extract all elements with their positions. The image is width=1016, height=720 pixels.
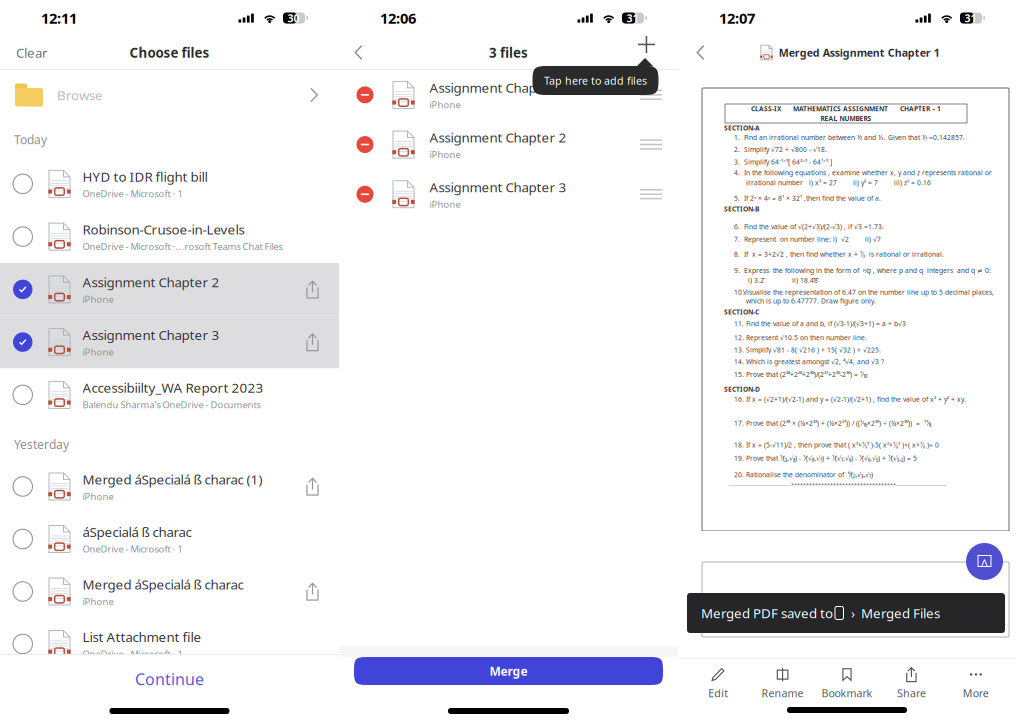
staticText: 7. Represent on number line: i) √2 ii) √… [734, 235, 881, 244]
button[interactable]: Share [879, 666, 944, 700]
button[interactable]: Assignment Chapter 2 [0, 263, 339, 316]
staticText: OneDrive - Microsoft · 1 [82, 648, 182, 660]
button[interactable]: Back [678, 36, 724, 69]
staticText: 16. If x = (√2+1)/(√2-1) and y = (√2-1)/… [734, 395, 966, 404]
button[interactable]: Clear [0, 36, 86, 69]
button[interactable]: Rename [750, 666, 815, 700]
staticText: CLASS-IX MATHEMATICS ASSIGNMENT CHAPTER … [751, 104, 941, 113]
staticText: Merge [489, 663, 527, 679]
staticText: 14. Which is greatest amongst √2, ⁴√4, a… [734, 357, 884, 366]
button[interactable]: Markup [966, 543, 1003, 580]
staticText: 12. Represent √10.5 on then number line. [734, 333, 867, 342]
staticText: 10.Visualise the representation of 6.47 … [734, 288, 994, 297]
staticText: Assignment Chapter 2 [82, 273, 219, 291]
button[interactable]: Add files [638, 36, 678, 69]
button[interactable]: Assignment Chapter 2 [339, 120, 678, 169]
staticText: SECTION-D [724, 385, 760, 394]
staticText: SECTION-A [724, 123, 760, 132]
staticText: OneDrive - Microsoft · 1 [82, 187, 182, 200]
staticText: 20. Rationalise the denominator of ⁶⁄(₂₊… [734, 470, 873, 479]
staticText: iPhone [429, 98, 460, 111]
staticText: Accessibiilty_WA Report 2023 [82, 379, 263, 396]
staticText: Choose files [129, 44, 209, 61]
staticText: Merged Assignment Chapter 1 [779, 45, 940, 60]
staticText: which is up to 6.47777. Draw figure only… [734, 296, 876, 305]
staticText: 12:06 [380, 8, 416, 28]
button[interactable]: Merged áSpecialá ß charac [0, 565, 339, 618]
staticText: List Attachment file [82, 628, 201, 646]
staticText: 31 [964, 11, 976, 25]
staticText: REAL NUMBERS [820, 114, 871, 123]
staticText: 30 [287, 11, 299, 25]
staticText: Balendu Sharma's OneDrive - Documents [82, 398, 260, 411]
staticText: Today [14, 132, 47, 147]
staticText: Merged PDF saved to › Merged Files [701, 604, 940, 622]
staticText: iPhone [429, 198, 460, 210]
staticText: Assignment Chapter 3 [82, 326, 219, 344]
staticText: 12:11 [41, 8, 77, 28]
button[interactable]: Accessibiilty_WA Report 2023 [0, 368, 339, 421]
button[interactable]: List Attachment file [0, 618, 339, 670]
staticText: 1. Find an irrational number between ½ a… [734, 133, 965, 142]
staticText: iPhone [82, 490, 113, 503]
staticText: iPhone [429, 148, 460, 161]
staticText: Robinson-Crusoe-in-Levels [82, 221, 244, 238]
button[interactable]: Assignment Chapter 3 [339, 169, 678, 219]
button[interactable]: More [944, 666, 1008, 700]
button[interactable]: Browse [0, 70, 339, 120]
staticText: iPhone [82, 293, 113, 305]
staticText: SECTION-B [724, 204, 759, 213]
staticText: 3 files [489, 44, 528, 61]
staticText: -------------------------------*********… [729, 481, 946, 488]
button[interactable]: Back [339, 36, 379, 69]
button[interactable]: Assignment Chapter 1 [339, 70, 678, 120]
staticText: 19. Prove that ¹⁄(₃₋√₈) - ¹⁄(√₈₋√₇) + ¹⁄… [734, 454, 917, 463]
staticText: Edit [708, 686, 728, 700]
button[interactable]: Robinson-Crusoe-in-Levels [0, 210, 339, 263]
staticText: 4. In the following equations , examine … [734, 168, 992, 177]
staticText: 9. Express the following in the form of … [734, 266, 991, 275]
staticText: 17. Prove that (2³⁸ × (¼×2³³) + (¼×2²⁷))… [734, 419, 931, 427]
staticText: More [963, 686, 989, 700]
staticText: Clear [16, 44, 48, 61]
staticText: 15. Prove that (2³⁸+2²⁹+2³⁹)/(2³¹+2³⁰-2³… [734, 370, 867, 379]
button[interactable]: Merge [354, 657, 663, 685]
staticText: iPhone [82, 595, 113, 608]
staticText: 8. If x = 3+2√2 , then find whether x + … [734, 250, 944, 258]
staticText: 12:07 [719, 8, 755, 28]
staticText: áSpecialá ß charac [82, 523, 191, 541]
staticText: Assignment Chapter 3 [429, 178, 566, 196]
staticText: OneDrive - Microsoft ·...rosoft Teams Ch… [82, 240, 282, 253]
button[interactable]: Merged áSpecialá ß charac (1) [0, 460, 339, 513]
staticText: HYD to IDR flight bill [82, 168, 207, 185]
staticText: 5. If 2ˣ × 4ʸ = 8¹ × 32¹ ,then find the … [734, 194, 881, 203]
staticText: 11. Find the value of a and b, if (√3-1)… [734, 319, 906, 328]
button[interactable]: Edit [686, 666, 750, 700]
button[interactable]: Assignment Chapter 3 [0, 316, 339, 369]
staticText: Assignment Chapter 2 [429, 128, 566, 146]
staticText: Tap here to add files [544, 73, 647, 88]
staticText: 6. Find the value of √(2+√3)/(2-√3) , if… [734, 222, 884, 231]
staticText: 31 [626, 11, 638, 25]
staticText: Assignment Chapter 1 [429, 79, 566, 96]
staticText: Share [897, 686, 926, 700]
staticText: 2. Simplify √72 + √800 - √18. [734, 145, 827, 154]
staticText: iPhone [82, 346, 113, 358]
staticText: Yesterday [14, 436, 69, 452]
button[interactable]: Bookmark [815, 666, 879, 700]
staticText: irrational number i) x³ = 27 ii) y² = 7 … [734, 178, 931, 187]
staticText: Continue [135, 668, 204, 690]
staticText: OneDrive - Microsoft · 1 [82, 543, 182, 555]
button[interactable]: Continue [0, 655, 339, 703]
button[interactable]: HYD to IDR flight bill [0, 157, 339, 210]
staticText: Merged áSpecialá ß charac (1) [82, 470, 262, 488]
staticText: i) 3.2̄ ii) 18.4̄8̄ [734, 276, 818, 285]
staticText: 13. Simplify √81 - 8( √216 ) + 15( √32 )… [734, 345, 881, 354]
staticText: Browse [57, 86, 103, 104]
staticText: 3. Simplify 64⁻¹ᐟ³[ 64²ᐟ³ - 64¹ᐟ³ ] [734, 158, 832, 166]
staticText: Bookmark [821, 686, 872, 700]
staticText: SECTION-C [724, 307, 759, 316]
staticText: 18. If x = (5-√11)/2 , then prove that (… [734, 440, 939, 449]
button[interactable]: áSpecialá ß charac [0, 513, 339, 565]
